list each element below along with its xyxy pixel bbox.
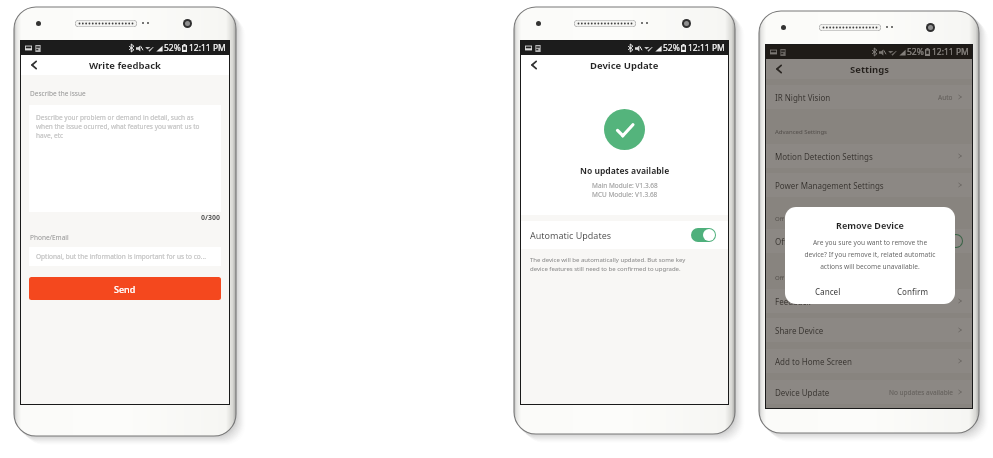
button[interactable]: Optional, but the information is importa… xyxy=(29,247,221,266)
staticText: Phone/Email xyxy=(30,233,69,242)
staticText: Confirm xyxy=(897,286,928,297)
staticText: 12:11 PM xyxy=(189,42,226,54)
staticText: Remove Device xyxy=(836,219,904,231)
staticText: Optional, but the information is importa… xyxy=(36,252,207,261)
button[interactable]: IR Night Vision xyxy=(775,85,963,109)
button[interactable]: Device Update xyxy=(775,380,963,404)
staticText: The device will be automatically updated… xyxy=(530,256,686,272)
staticText: Describe the issue xyxy=(30,89,86,98)
button[interactable]: Automatic Updates xyxy=(530,221,716,249)
staticText: Are you sure you want to remove the devi… xyxy=(804,238,936,271)
staticText: Device Update xyxy=(775,387,830,398)
staticText: Device Update xyxy=(590,59,659,72)
button[interactable]: Back xyxy=(26,57,42,73)
staticText: Advanced Settings xyxy=(775,128,827,136)
staticText: Off Device xyxy=(775,274,804,282)
staticText: Auto xyxy=(938,93,953,102)
button[interactable]: Add to Home Screen xyxy=(775,349,963,373)
staticText: Off xyxy=(775,236,787,247)
staticText: Cancel xyxy=(815,286,841,297)
staticText: 12:11 PM xyxy=(688,42,725,54)
staticText: 12:11 PM xyxy=(932,46,969,58)
button[interactable]: Cancel xyxy=(785,278,870,304)
button[interactable]: Confirm xyxy=(870,278,955,304)
button[interactable]: Back xyxy=(771,61,787,77)
staticText: Off Alarm Sound xyxy=(775,215,822,223)
button[interactable]: Describe your problem or demand in detai… xyxy=(29,105,221,212)
staticText: IR Night Vision xyxy=(775,92,831,103)
staticText: Feedback xyxy=(775,296,811,307)
staticText: Share Device xyxy=(775,325,824,336)
button[interactable]: Feedback xyxy=(775,289,963,313)
staticText: 0/300 xyxy=(201,213,220,223)
staticText: 52% xyxy=(663,42,680,54)
button[interactable]: Back xyxy=(526,57,542,73)
staticText: 52% xyxy=(907,46,924,58)
staticText: Main Module: V1.3.68 xyxy=(592,181,658,190)
button[interactable]: Motion Detection Settings xyxy=(775,144,963,168)
staticText: Write feedback xyxy=(89,59,161,72)
staticText: MCU Module: V1.3.68 xyxy=(592,190,658,199)
staticText: Settings xyxy=(850,63,889,76)
staticText: Add to Home Screen xyxy=(775,356,853,367)
button[interactable]: Share Device xyxy=(775,318,963,342)
staticText: Describe your problem or demand in detai… xyxy=(36,113,200,140)
staticText: Power Management Settings xyxy=(775,180,884,191)
staticText: No updates available xyxy=(889,388,953,397)
staticText: No updates available xyxy=(580,165,670,177)
staticText: Automatic Updates xyxy=(530,229,612,241)
button[interactable]: Off xyxy=(775,229,963,253)
button[interactable]: Power Management Settings xyxy=(775,173,963,197)
staticText: 52% xyxy=(164,42,181,54)
staticText: Motion Detection Settings xyxy=(775,151,873,162)
button[interactable]: Send xyxy=(29,277,221,300)
staticText: Send xyxy=(114,283,136,295)
